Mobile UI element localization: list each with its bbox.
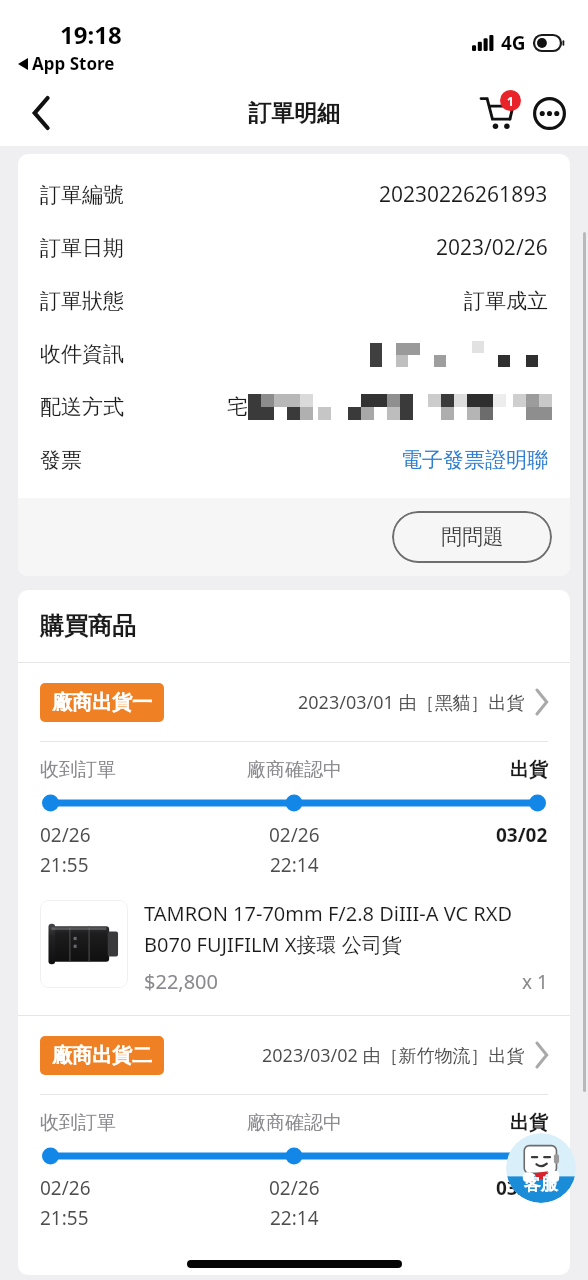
- staticText: 02/26: [40, 822, 91, 848]
- button[interactable]: TAMRON 17-70mm F/2.8 DiIII-A VC RXD: [18, 882, 570, 1015]
- staticText: 發票: [40, 447, 82, 473]
- staticText: x 1: [522, 969, 548, 995]
- staticText: 02/26: [269, 822, 320, 848]
- button[interactable]: 問問題: [392, 511, 552, 563]
- staticText: $22,800: [144, 968, 218, 995]
- staticText: 訂單成立: [464, 288, 548, 314]
- staticText: 收到訂單: [40, 758, 210, 782]
- staticText: 出貨: [379, 1111, 548, 1135]
- button[interactable]: 客服 Customer service: [506, 1133, 576, 1203]
- staticText: 21:55: [40, 852, 89, 878]
- staticText: 03/02: [496, 822, 548, 848]
- button[interactable]: More options: [526, 90, 572, 136]
- staticText: 03/03: [496, 1175, 548, 1201]
- button[interactable]: 廠商出貨一: [18, 663, 570, 741]
- button[interactable]: Shopping cart, 1 item: [472, 88, 522, 138]
- staticText: 宅: [227, 394, 248, 420]
- staticText: 2023/03/01 由［黑貓］出貨: [298, 690, 525, 715]
- staticText: TAMRON 17-70mm F/2.8 DiIII-A VC RXD: [144, 900, 513, 927]
- staticText: 21:55: [40, 1205, 89, 1231]
- staticText: 收件資訊: [40, 341, 124, 367]
- staticText: 訂單編號: [40, 182, 124, 208]
- staticText: 訂單狀態: [40, 288, 124, 314]
- staticText: 訂單日期: [40, 235, 124, 261]
- staticText: 2023/02/26: [436, 233, 548, 262]
- staticText: 2023/03/02 由［新竹物流］出貨: [262, 1043, 525, 1068]
- staticText: 購買商品: [40, 611, 136, 641]
- staticText: 02/26: [269, 1175, 320, 1201]
- button[interactable]: Back: [14, 86, 68, 140]
- staticText: 廠商確認中: [210, 758, 379, 782]
- button[interactable]: 電子發票證明聯: [401, 447, 548, 473]
- staticText: B070 FUJIFILM X接環 公司貨: [144, 931, 402, 958]
- button[interactable]: 廠商出貨二: [18, 1016, 570, 1094]
- staticText: 收到訂單: [40, 1111, 210, 1135]
- staticText: 22:14: [270, 852, 319, 878]
- staticText: 問問題: [441, 524, 504, 550]
- staticText: 出貨: [379, 758, 548, 782]
- staticText: 廠商出貨二: [52, 1043, 152, 1068]
- staticText: 20230226261893: [379, 180, 548, 209]
- staticText: 客服: [524, 1174, 558, 1195]
- staticText: 廠商確認中: [210, 1111, 379, 1135]
- staticText: 02/26: [40, 1175, 91, 1201]
- staticText: 配送方式: [40, 394, 124, 420]
- staticText: 訂單明細: [248, 99, 340, 128]
- staticText: 4G: [501, 30, 526, 56]
- staticText: 22:14: [270, 1205, 319, 1231]
- staticText: 1: [507, 93, 514, 109]
- staticText: App Store: [32, 52, 115, 75]
- staticText: 19:18: [60, 18, 122, 51]
- staticText: 廠商出貨一: [52, 690, 152, 715]
